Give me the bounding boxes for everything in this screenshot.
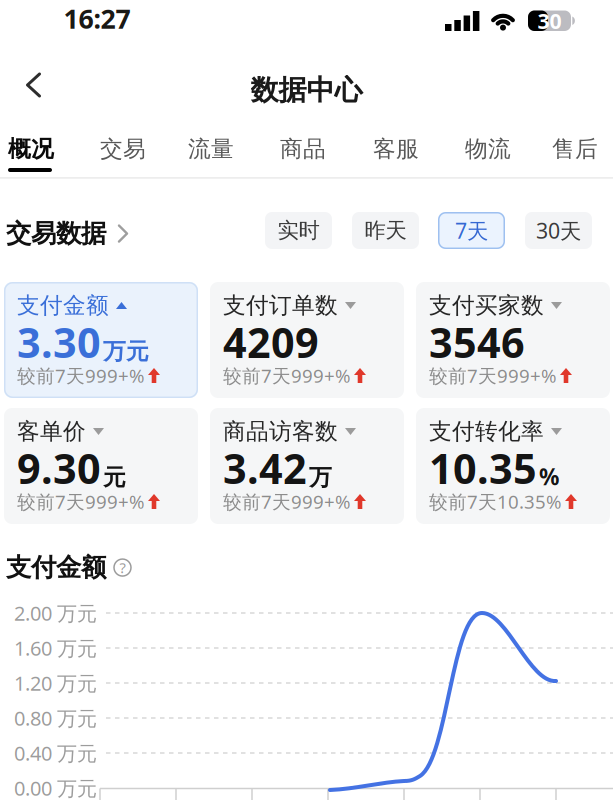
staticText: 1.60 万元 bbox=[14, 635, 97, 661]
button[interactable]: 商品 bbox=[268, 134, 338, 164]
staticText: 3546 bbox=[429, 315, 525, 369]
staticText: 0.80 万元 bbox=[14, 705, 97, 731]
button[interactable]: 支付买家数 bbox=[416, 282, 610, 398]
button[interactable]: 物流 bbox=[453, 134, 523, 164]
staticText: 交易数据 bbox=[6, 218, 106, 249]
button[interactable]: 支付转化率 bbox=[416, 408, 610, 524]
staticText: 售后 bbox=[552, 135, 598, 163]
staticText: 3.42 bbox=[223, 441, 307, 495]
staticText: 9.30 bbox=[17, 441, 101, 495]
staticText: 概况 bbox=[8, 135, 54, 163]
staticText: 7天 bbox=[455, 216, 488, 245]
staticText: 支付订单数 bbox=[223, 292, 338, 319]
button[interactable]: 7天 bbox=[438, 212, 505, 249]
staticText: 数据中心 bbox=[250, 73, 362, 107]
staticText: 较前7天999+% bbox=[223, 489, 351, 514]
button[interactable]: 客服 bbox=[361, 134, 431, 164]
staticText: 物流 bbox=[465, 135, 511, 163]
button[interactable]: 流量 bbox=[176, 134, 246, 164]
button[interactable]: 实时 bbox=[265, 212, 332, 249]
staticText: 支付金额 bbox=[6, 552, 106, 583]
staticText: 较前7天10.35% bbox=[429, 489, 562, 514]
staticText: 支付金额 bbox=[17, 292, 109, 319]
button[interactable]: 概况 bbox=[0, 134, 66, 164]
staticText: 较前7天999+% bbox=[429, 363, 557, 388]
staticText: 0.40 万元 bbox=[14, 740, 97, 766]
staticText: 流量 bbox=[188, 135, 234, 163]
staticText: 商品 bbox=[280, 135, 326, 163]
button[interactable]: 交易 bbox=[88, 134, 158, 164]
staticText: 30天 bbox=[536, 216, 581, 245]
staticText: 万元 bbox=[103, 338, 149, 365]
button[interactable]: 交易数据 bbox=[6, 218, 129, 249]
staticText: 较前7天999+% bbox=[17, 363, 145, 388]
staticText: 万 bbox=[309, 464, 332, 491]
button[interactable]: 支付金额说明 bbox=[114, 559, 131, 576]
staticText: 支付转化率 bbox=[429, 418, 544, 445]
staticText: 30 bbox=[537, 7, 561, 35]
staticText: 商品访客数 bbox=[223, 418, 338, 445]
staticText: 0.00 万元 bbox=[14, 775, 97, 800]
staticText: 较前7天999+% bbox=[223, 363, 351, 388]
staticText: 交易 bbox=[100, 135, 146, 163]
button[interactable]: 商品访客数 bbox=[210, 408, 404, 524]
staticText: 16:27 bbox=[63, 1, 130, 36]
button[interactable]: 30天 bbox=[525, 212, 592, 249]
staticText: 10.35 bbox=[429, 441, 537, 495]
staticText: 元 bbox=[103, 464, 126, 491]
staticText: 实时 bbox=[277, 217, 319, 244]
staticText: 1.20 万元 bbox=[14, 670, 97, 696]
button[interactable]: 昨天 bbox=[352, 212, 419, 249]
staticText: 支付买家数 bbox=[429, 292, 544, 319]
staticText: 昨天 bbox=[364, 217, 406, 244]
button[interactable]: 支付订单数 bbox=[210, 282, 404, 398]
staticText: % bbox=[539, 461, 559, 491]
button[interactable]: 客单价 bbox=[4, 408, 198, 524]
staticText: 客单价 bbox=[17, 418, 86, 445]
staticText: 客服 bbox=[373, 135, 419, 163]
staticText: 较前7天999+% bbox=[17, 489, 145, 514]
button[interactable]: 支付金额 bbox=[4, 282, 198, 398]
staticText: ? bbox=[119, 558, 125, 577]
button[interactable]: 售后 bbox=[540, 134, 610, 164]
staticText: 2.00 万元 bbox=[14, 600, 97, 626]
staticText: 3.30 bbox=[17, 315, 101, 369]
staticText: 4209 bbox=[223, 315, 319, 369]
button[interactable]: Back bbox=[16, 64, 51, 106]
